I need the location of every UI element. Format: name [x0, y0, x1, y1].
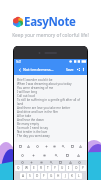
staticText: You were dreaming of me [17, 86, 54, 90]
staticText: Y [54, 166, 56, 170]
staticText: EasyNote [24, 14, 76, 30]
button[interactable]: Tool 10 [42, 153, 47, 158]
button[interactable]: W [23, 165, 30, 171]
button[interactable]: K [69, 173, 75, 179]
button[interactable]: A [20, 173, 26, 179]
button[interactable]: Y [52, 165, 58, 171]
staticText: E [33, 166, 35, 170]
staticText: W [25, 166, 28, 170]
staticText: K [71, 174, 73, 178]
staticText: A [22, 174, 25, 178]
staticText: R [40, 166, 42, 170]
button[interactable]: D [34, 173, 40, 179]
button[interactable]: Key tool 3 [49, 160, 53, 164]
button[interactable]: O [73, 165, 79, 171]
button[interactable]: Share [76, 67, 81, 72]
button[interactable]: Key tool 1 [29, 160, 33, 164]
button[interactable]: Tool 12 [65, 153, 70, 158]
button[interactable]: Tool 5 [61, 144, 66, 149]
button[interactable]: Tool 13 [76, 153, 81, 158]
staticText: And there are love you take me better [17, 106, 71, 110]
button[interactable]: L [76, 173, 82, 179]
button[interactable]: Tool 3 [44, 144, 49, 149]
button[interactable]: I [66, 165, 72, 171]
staticText: All or take [17, 114, 32, 118]
staticText: Be many empty [17, 122, 40, 126]
button[interactable]: R [38, 165, 44, 171]
button[interactable]: H [55, 173, 61, 179]
staticText: So much I need to say [17, 126, 48, 130]
staticText: Not tenderness... [23, 67, 54, 72]
button[interactable]: S [27, 173, 33, 179]
button[interactable]: Key tool 4 [58, 160, 62, 164]
staticText: S [29, 174, 31, 178]
staticText: J [65, 174, 66, 178]
staticText: Q [17, 166, 20, 170]
button[interactable]: Tool 2 [35, 144, 40, 149]
staticText: Save [66, 67, 74, 72]
button[interactable]: Key tool 6 [77, 160, 81, 164]
button[interactable]: E [31, 165, 37, 171]
button[interactable]: Tool 1 [26, 144, 31, 149]
staticText: L [78, 174, 80, 178]
staticText: I will love long [17, 90, 38, 94]
button[interactable]: J [62, 173, 68, 179]
staticText: Not tender is the love [17, 130, 48, 134]
button[interactable]: Tool 11 [54, 153, 59, 158]
staticText: Keep your memory of colorful life! [12, 32, 89, 39]
button[interactable]: Tool 0 [18, 144, 23, 149]
button[interactable]: Key tool 2 [39, 160, 43, 164]
button[interactable]: T [45, 165, 51, 171]
staticText: P [82, 166, 84, 170]
staticText: D [36, 174, 39, 178]
button[interactable]: Back [14, 64, 87, 75]
button[interactable]: Tool 9 [31, 153, 36, 158]
staticText: H [57, 174, 60, 178]
staticText: To still be suffering in a gentle gift a… [17, 98, 84, 102]
button[interactable]: Tool 7 [78, 144, 83, 149]
button[interactable]: Back [16, 66, 23, 73]
staticText: I [68, 166, 70, 170]
staticText: U [61, 166, 64, 170]
staticText: G [50, 174, 53, 178]
button[interactable]: P [80, 165, 86, 171]
button[interactable]: Q [15, 165, 22, 171]
staticText: And drive and love in the film [17, 110, 59, 114]
staticText: Brief I wonder could it be [17, 78, 53, 82]
staticText: O [75, 166, 78, 170]
button[interactable]: U [59, 165, 65, 171]
button[interactable]: Tool 4 [52, 144, 57, 149]
staticText: land [17, 102, 24, 106]
staticText: 9:41 [16, 60, 22, 64]
button[interactable]: More options [81, 67, 86, 72]
staticText: The day you went away [17, 134, 50, 138]
staticText: And hear the dawn [17, 118, 44, 122]
staticText: Call out loud [17, 94, 35, 98]
button[interactable]: Key tool 5 [68, 160, 72, 164]
staticText: When I was dreaming about you today [17, 82, 72, 86]
button[interactable]: Tool 6 [70, 144, 75, 149]
staticText: F [43, 174, 45, 178]
button[interactable]: Tool 8 [20, 153, 25, 158]
button[interactable]: F [41, 173, 47, 179]
button[interactable]: G [48, 173, 54, 179]
button[interactable]: Key tool 0 [20, 160, 24, 164]
staticText: T [47, 166, 49, 170]
